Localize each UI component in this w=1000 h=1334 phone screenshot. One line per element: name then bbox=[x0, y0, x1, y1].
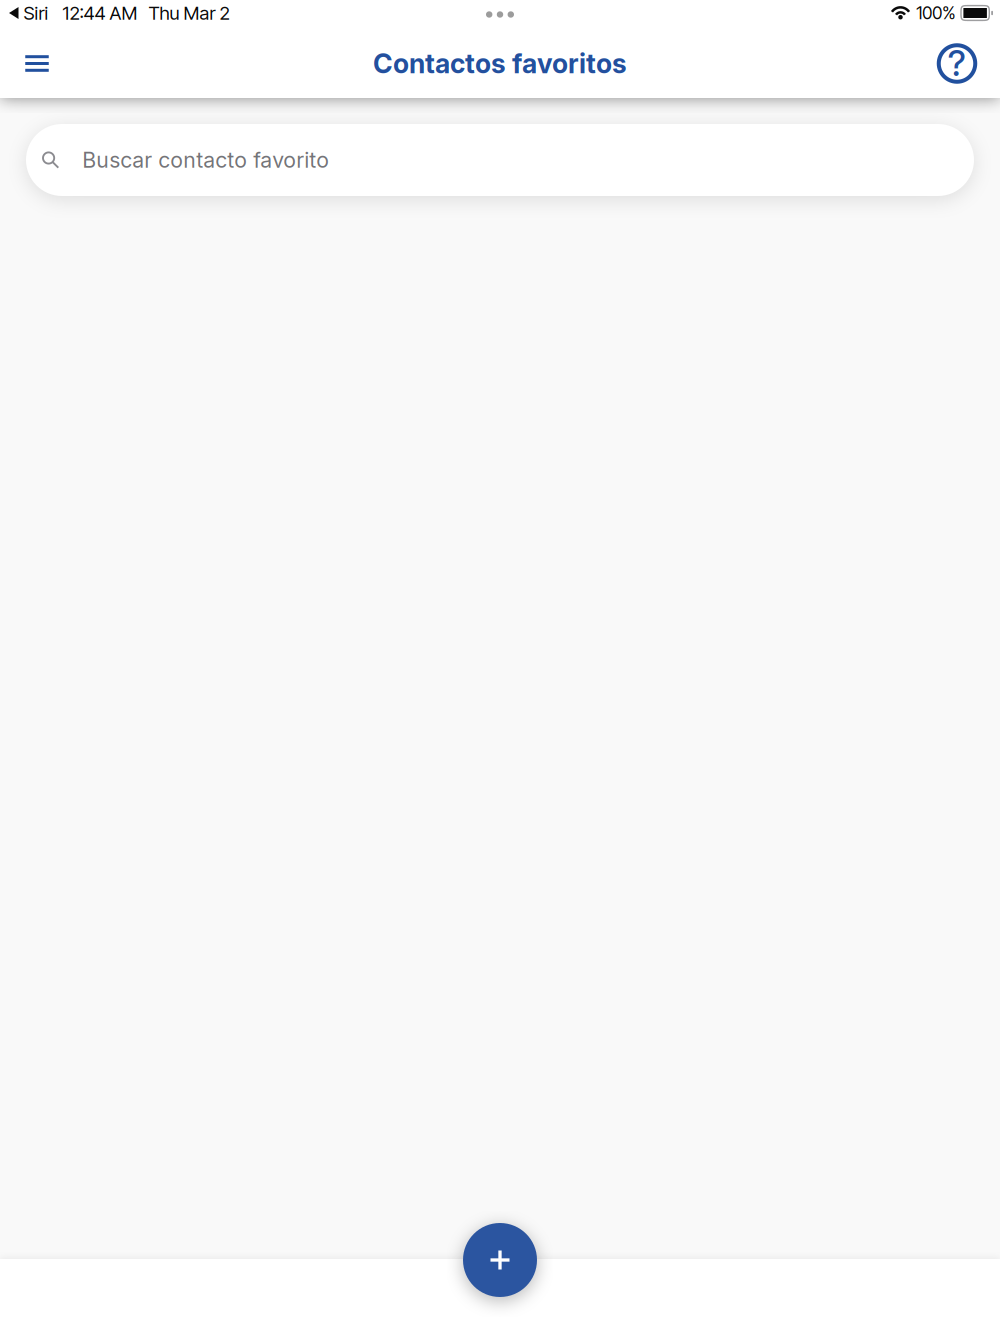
staticText: ? bbox=[947, 42, 966, 84]
toolbar bbox=[0, 1259, 1000, 1334]
staticText: 100% bbox=[916, 2, 955, 23]
button[interactable]: Buscar contacto favorito bbox=[26, 124, 974, 196]
button[interactable]: Ayuda bbox=[926, 29, 988, 98]
staticText: Contactos favoritos bbox=[373, 47, 627, 80]
staticText: 12:44 AM bbox=[62, 2, 137, 24]
navigationBar: Contactos favoritos bbox=[0, 0, 1000, 98]
button[interactable]: Añadir contacto favorito bbox=[463, 1223, 537, 1297]
staticText: Thu Mar 2 bbox=[148, 2, 229, 24]
staticText: Siri bbox=[23, 2, 48, 24]
button[interactable]: Menú bbox=[7, 29, 67, 98]
staticText: Buscar contacto favorito bbox=[82, 147, 329, 173]
